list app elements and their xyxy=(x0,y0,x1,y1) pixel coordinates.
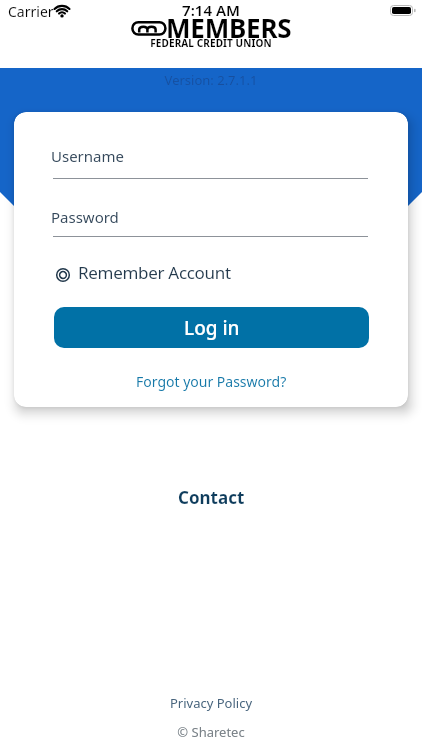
staticText: MEMBERS xyxy=(166,10,292,45)
staticText: 7:14 AM xyxy=(0,0,422,20)
staticText: Remember Account xyxy=(78,261,231,284)
staticText: © Sharetec xyxy=(0,723,422,741)
button[interactable]: Privacy Policy xyxy=(156,692,266,714)
staticText: Log in xyxy=(184,315,240,341)
staticText: Username xyxy=(51,146,124,166)
button[interactable]: Contact xyxy=(161,483,261,511)
button[interactable]: Password xyxy=(53,203,369,245)
staticText: Password xyxy=(51,207,119,227)
staticText: Privacy Policy xyxy=(170,694,253,712)
button[interactable]: Log in xyxy=(54,307,369,348)
staticText: Version: 2.7.1.1 xyxy=(0,71,422,89)
button[interactable]: Remember Account xyxy=(54,264,274,292)
staticText: Contact xyxy=(178,486,245,509)
staticText: FEDERAL CREDIT UNION xyxy=(0,36,422,50)
staticText: Carrier xyxy=(8,2,54,21)
button[interactable]: Username xyxy=(53,143,369,185)
button[interactable]: Forgot your Password? xyxy=(111,368,311,394)
staticText: Forgot your Password? xyxy=(136,372,287,391)
